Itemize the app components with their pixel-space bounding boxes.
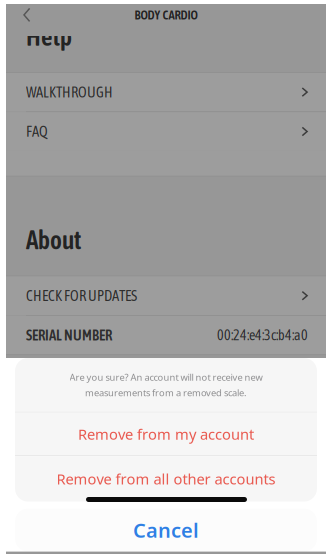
staticText: Remove from my account bbox=[78, 424, 254, 444]
staticText: SERIAL NUMBER bbox=[26, 327, 112, 343]
staticText: CHECK FOR UPDATES bbox=[26, 287, 137, 304]
staticText: Help bbox=[26, 22, 72, 51]
staticText: Remove from all other accounts bbox=[56, 469, 275, 489]
button[interactable]: FAQ bbox=[6, 112, 326, 151]
button[interactable]: Back bbox=[6, 4, 45, 26]
button[interactable]: Remove from all other accounts bbox=[15, 456, 317, 502]
staticText: FAQ bbox=[26, 123, 48, 140]
staticText: Cancel bbox=[133, 517, 199, 543]
button[interactable]: WALKTHROUGH bbox=[6, 73, 326, 111]
staticText: Are you sure? An account will not receiv… bbox=[69, 371, 262, 383]
staticText: About bbox=[26, 226, 81, 255]
button[interactable]: CHECK FOR UPDATES bbox=[6, 276, 326, 315]
button[interactable]: Remove from my account bbox=[15, 413, 317, 455]
button[interactable]: SERIAL NUMBER bbox=[6, 316, 326, 354]
button[interactable]: Cancel bbox=[15, 509, 317, 552]
staticText: WALKTHROUGH bbox=[26, 84, 113, 100]
staticText: measurements from a removed scale. bbox=[85, 386, 247, 399]
staticText: 00:24:e4:3c:b4:a0 bbox=[217, 327, 308, 343]
staticText: BODY CARDIO bbox=[134, 8, 197, 22]
